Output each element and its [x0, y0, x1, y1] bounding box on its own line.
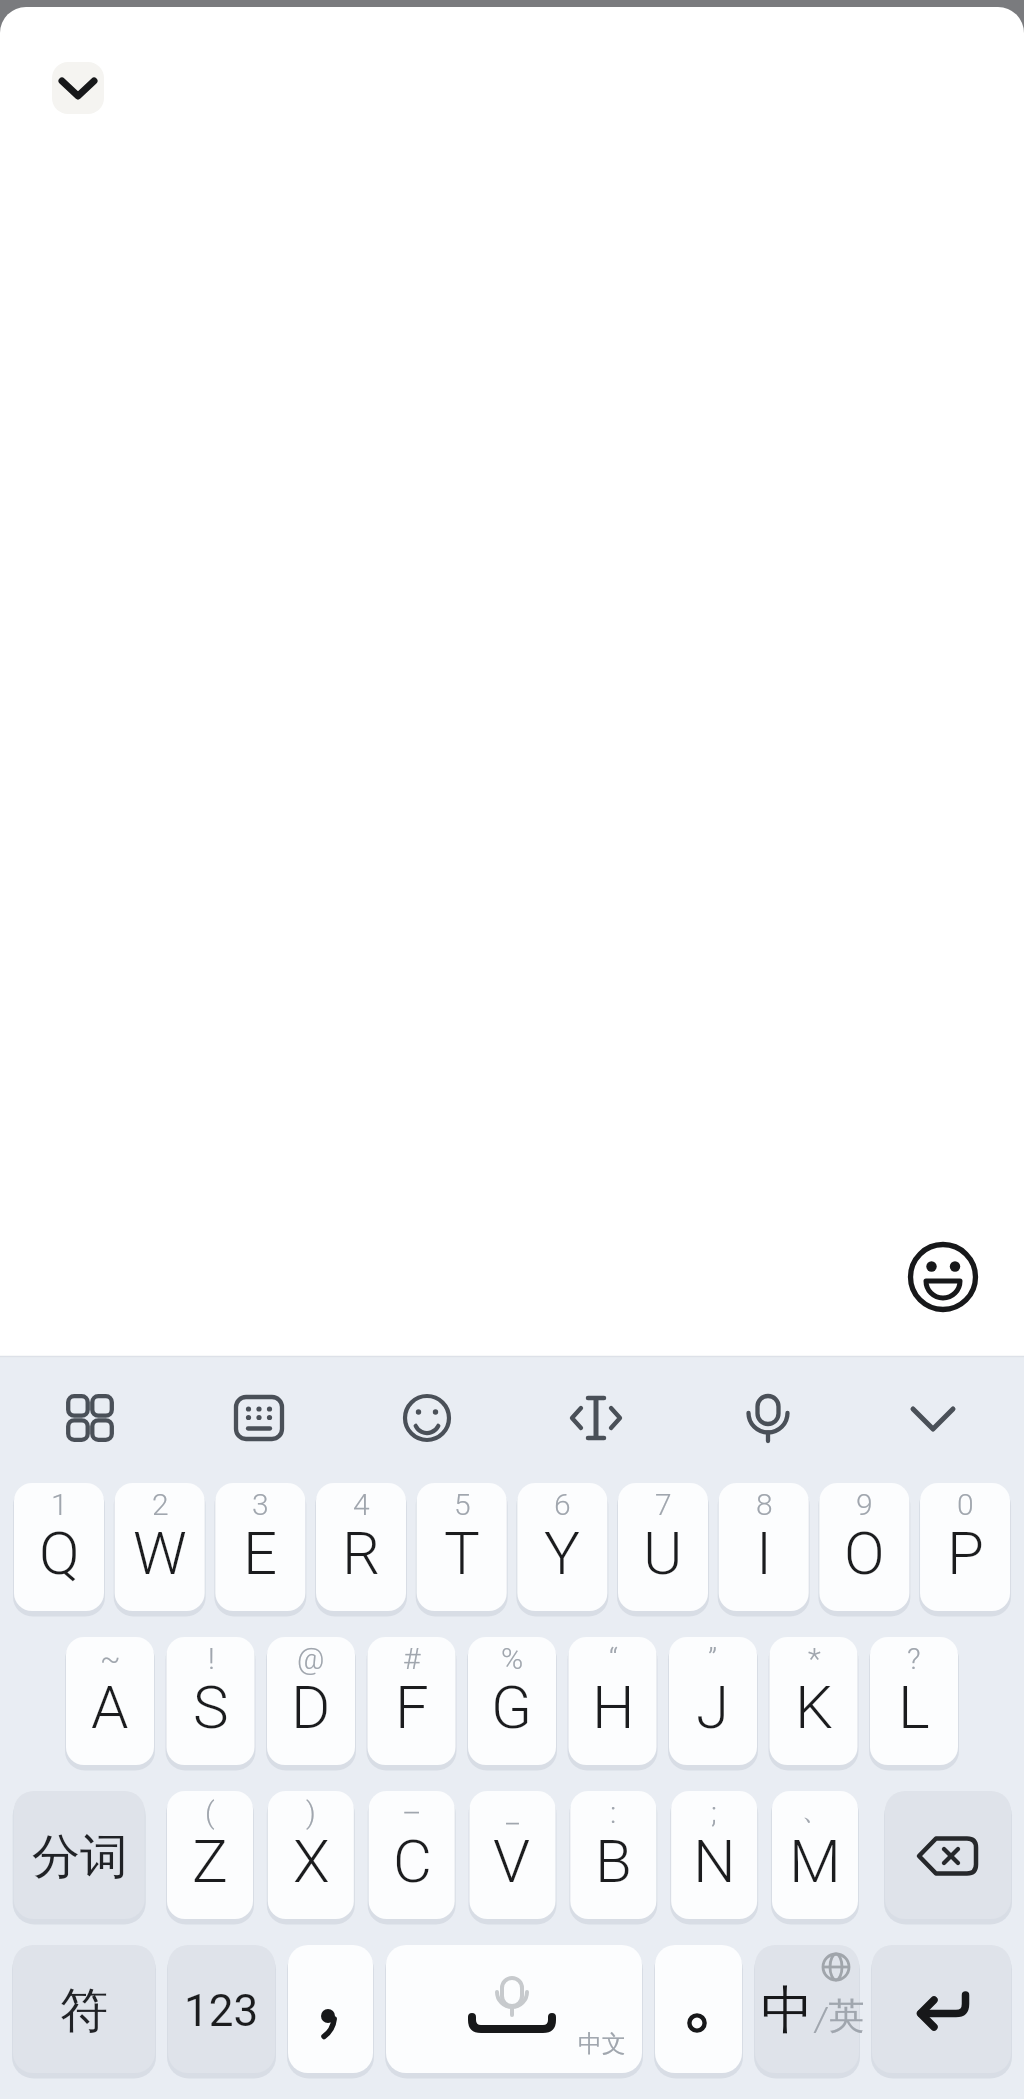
staticText: X — [293, 1826, 330, 1896]
staticText: U — [643, 1518, 683, 1588]
staticText: “ — [609, 1641, 618, 1676]
staticText: 123 — [184, 1985, 259, 2037]
staticText: 中/英 — [761, 1978, 865, 2044]
staticText: ( — [205, 1795, 215, 1830]
staticText: 中文 — [578, 2029, 626, 2059]
staticText: 分词 — [32, 1827, 128, 1887]
staticText: V — [493, 1826, 531, 1896]
staticText: M — [789, 1826, 841, 1896]
staticText: ! — [208, 1641, 215, 1676]
staticText: H — [592, 1672, 635, 1742]
staticText: D — [291, 1672, 331, 1742]
staticText: 符 — [60, 1981, 108, 2041]
staticText: Y — [544, 1518, 580, 1588]
staticText: O — [844, 1518, 885, 1588]
staticText: 3 — [252, 1487, 269, 1522]
staticText: A — [91, 1672, 129, 1742]
staticText: ; — [711, 1795, 717, 1830]
staticText: : — [610, 1795, 617, 1830]
staticText: 6 — [554, 1487, 571, 1522]
staticText: 4 — [353, 1487, 370, 1522]
staticText: ” — [708, 1641, 718, 1676]
staticText: F — [395, 1672, 429, 1742]
staticText: I — [756, 1518, 772, 1588]
staticText: # — [403, 1641, 421, 1676]
staticText: N — [693, 1826, 736, 1896]
staticText: E — [243, 1518, 278, 1588]
staticText: 1 — [51, 1487, 68, 1522]
staticText: P — [947, 1518, 984, 1588]
staticText: 7 — [655, 1487, 672, 1522]
staticText: % — [501, 1641, 524, 1676]
staticText: J — [696, 1672, 730, 1742]
staticText: ? — [907, 1641, 921, 1676]
staticText: ) — [306, 1795, 316, 1830]
staticText: G — [491, 1672, 533, 1742]
staticText: B — [595, 1826, 632, 1896]
staticText: K — [795, 1672, 833, 1742]
staticText: W — [133, 1518, 187, 1588]
staticText: * — [808, 1641, 821, 1676]
staticText: 9 — [856, 1487, 873, 1522]
staticText: L — [898, 1672, 930, 1742]
staticText: – — [402, 1795, 422, 1830]
staticText: _ — [506, 1795, 519, 1830]
staticText: 8 — [756, 1487, 773, 1522]
staticText: Z — [192, 1826, 228, 1896]
staticText: S — [193, 1672, 229, 1742]
staticText: 2 — [152, 1487, 169, 1522]
staticText: ~ — [100, 1641, 121, 1676]
staticText: 5 — [454, 1487, 471, 1522]
staticText: C — [393, 1826, 432, 1896]
staticText: T — [444, 1518, 480, 1588]
staticText: Q — [39, 1518, 80, 1588]
staticText: @ — [297, 1641, 325, 1676]
staticText: 、 — [802, 1795, 828, 1828]
staticText: R — [342, 1518, 381, 1588]
staticText: 0 — [957, 1487, 974, 1522]
